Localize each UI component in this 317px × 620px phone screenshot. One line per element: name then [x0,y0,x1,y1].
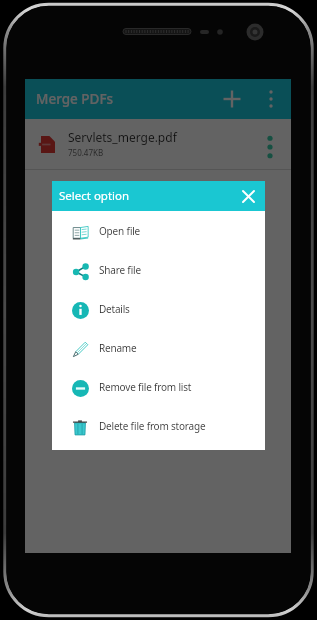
button[interactable]: Details [52,290,265,329]
staticText: Select option [59,188,130,204]
button[interactable]: More options [254,82,288,116]
button[interactable]: Open file [52,212,265,251]
staticText: Open file [99,224,141,238]
button[interactable]: Servlets_merge.pdf [25,119,291,170]
staticText: Rename [99,341,137,355]
button[interactable]: Remove file from list [52,368,265,407]
button[interactable]: Add file [215,82,249,116]
button[interactable]: Rename [52,329,265,368]
staticText: Delete file from storage [99,419,206,433]
staticText: Remove file from list [99,380,192,394]
button[interactable]: File options [255,132,285,162]
staticText: Details [99,302,130,316]
staticText: Merge PDFs [36,90,114,108]
staticText: Share file [99,263,141,277]
button[interactable]: Delete file from storage [52,407,265,446]
button[interactable]: Close [238,186,258,206]
staticText: Servlets_merge.pdf [68,129,177,145]
staticText: 750.47KB [68,147,104,158]
button[interactable]: Share file [52,251,265,290]
